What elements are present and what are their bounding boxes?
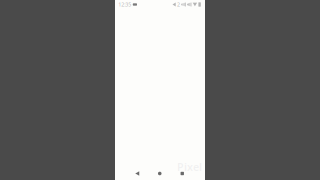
staticText: 12:35 xyxy=(118,1,131,8)
button[interactable]: Back xyxy=(126,167,148,180)
staticText: Pixel xyxy=(177,160,202,174)
button[interactable]: Recent apps xyxy=(171,167,193,180)
staticText: 2 xyxy=(177,1,180,8)
button[interactable]: Home xyxy=(148,167,171,180)
